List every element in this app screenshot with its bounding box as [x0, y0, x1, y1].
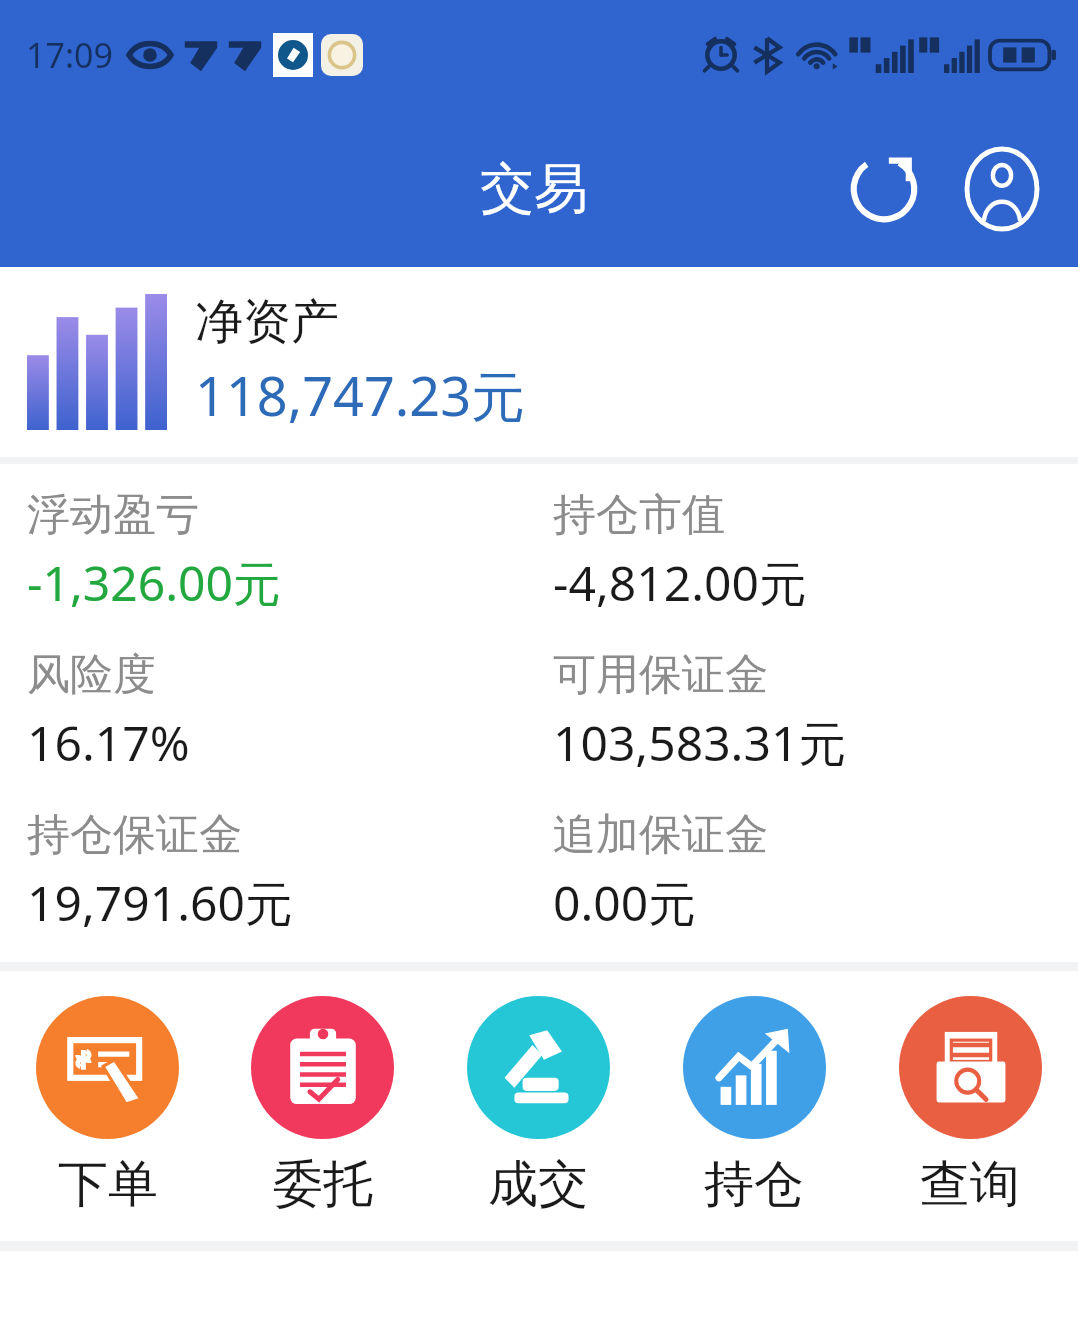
staticText: -1,326.00元 — [27, 550, 281, 616]
staticText: 持仓保证金 — [27, 808, 242, 862]
staticText: 交易 — [480, 155, 588, 223]
staticText: -4,812.00元 — [553, 550, 807, 616]
staticText: 17:09 — [26, 32, 113, 78]
staticText: 103,583.31元 — [553, 710, 847, 776]
button[interactable]: 下单 — [0, 971, 215, 1241]
staticText: 委托 — [273, 1153, 373, 1216]
staticText: 成交 — [488, 1153, 588, 1216]
button[interactable]: 净资产 — [0, 267, 1078, 457]
button[interactable]: 查询 — [862, 971, 1078, 1241]
staticText: 浮动盈亏 — [27, 488, 199, 542]
staticText: 19,791.60元 — [27, 870, 293, 936]
button[interactable]: Refresh — [832, 137, 936, 241]
staticText: 净资产 — [195, 292, 339, 352]
staticText: 追加保证金 — [553, 808, 768, 862]
button[interactable]: 成交 — [430, 971, 646, 1241]
staticText: 持仓市值 — [553, 488, 725, 542]
staticText: 118,747.23元 — [195, 358, 526, 432]
staticText: 下单 — [58, 1153, 158, 1216]
staticText: 可用保证金 — [553, 648, 768, 702]
button[interactable]: 持仓 — [646, 971, 862, 1241]
staticText: 16.17% — [27, 710, 190, 775]
staticText: 0.00元 — [553, 870, 697, 936]
staticText: 风险度 — [27, 648, 156, 702]
button[interactable]: 委托 — [215, 971, 430, 1241]
button[interactable]: Account — [950, 137, 1054, 241]
staticText: 持仓 — [704, 1153, 804, 1216]
staticText: 查询 — [920, 1153, 1020, 1216]
